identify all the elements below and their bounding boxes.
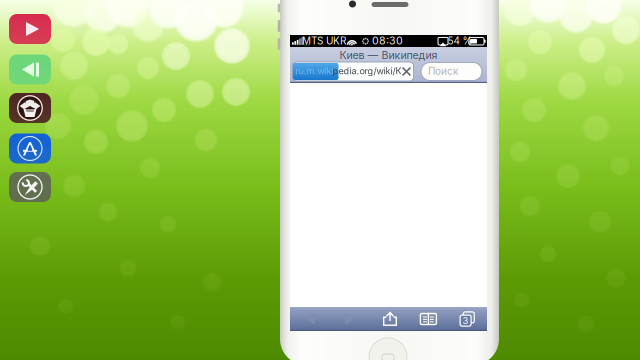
- button[interactable]: Previous video: [9, 54, 51, 84]
- staticText: 54 %: [447, 35, 472, 47]
- staticText: 3: [463, 315, 469, 326]
- staticText: 08:30: [372, 34, 403, 47]
- button[interactable]: Forward: [333, 307, 365, 331]
- button[interactable]: Play video: [9, 14, 51, 44]
- button[interactable]: Back: [295, 307, 327, 331]
- staticText: Поиск: [428, 65, 458, 77]
- button[interactable]: Tabs: [451, 307, 483, 331]
- button[interactable]: Share: [374, 307, 406, 331]
- button[interactable]: Tools: [9, 172, 51, 202]
- button[interactable]: Cydia: [9, 93, 51, 123]
- staticText: Киев — Википедия: [339, 48, 437, 61]
- staticText: ...: [303, 38, 309, 47]
- staticText: MTS UKR: [302, 35, 346, 47]
- staticText: ru.m.wiki: [295, 65, 333, 76]
- button[interactable]: Home: [368, 337, 408, 360]
- staticText: pedia.org/wiki/К: [332, 65, 401, 76]
- button[interactable]: Search: [421, 62, 482, 80]
- button[interactable]: Address: [292, 62, 413, 81]
- button[interactable]: App Store: [9, 133, 51, 163]
- button[interactable]: Bookmarks: [412, 307, 444, 331]
